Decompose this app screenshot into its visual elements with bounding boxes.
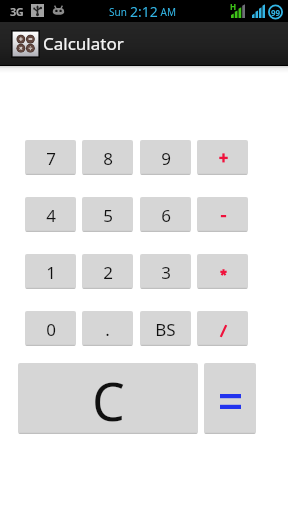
staticText: 99: [271, 7, 281, 18]
staticText: 4: [46, 204, 56, 227]
staticText: C: [92, 365, 125, 434]
button[interactable]: 6: [140, 197, 191, 232]
staticText: Calculator: [43, 32, 124, 55]
button[interactable]: Divide: [197, 311, 248, 346]
staticText: 9: [161, 147, 171, 170]
staticText: 2: [103, 261, 113, 284]
staticText: AM: [158, 5, 177, 19]
button[interactable]: 8: [82, 140, 133, 175]
button[interactable]: 2: [82, 254, 133, 289]
staticText: 2:12: [130, 2, 158, 21]
staticText: 8: [103, 147, 113, 170]
staticText: 1: [46, 261, 56, 284]
button[interactable]: 5: [82, 197, 133, 232]
staticText: 3: [161, 261, 171, 284]
staticText: .: [105, 318, 110, 341]
staticText: 6: [161, 204, 171, 227]
staticText: 5: [103, 204, 113, 227]
button[interactable]: BS: [140, 311, 191, 346]
button[interactable]: Plus: [197, 140, 248, 175]
button[interactable]: 0: [25, 311, 76, 346]
button[interactable]: .: [82, 311, 133, 346]
button[interactable]: 9: [140, 140, 191, 175]
button[interactable]: 3: [140, 254, 191, 289]
button[interactable]: Equals: [204, 363, 256, 434]
button[interactable]: Multiply: [197, 254, 248, 289]
button[interactable]: 7: [25, 140, 76, 175]
button[interactable]: Minus: [197, 197, 248, 232]
staticText: BS: [155, 318, 176, 341]
staticText: Sun: [109, 5, 130, 19]
staticText: 7: [46, 147, 56, 170]
button[interactable]: 1: [25, 254, 76, 289]
staticText: 3G: [10, 4, 24, 19]
staticText: H: [230, 1, 237, 12]
button[interactable]: 4: [25, 197, 76, 232]
button[interactable]: C: [18, 363, 198, 434]
staticText: 0: [46, 318, 56, 341]
